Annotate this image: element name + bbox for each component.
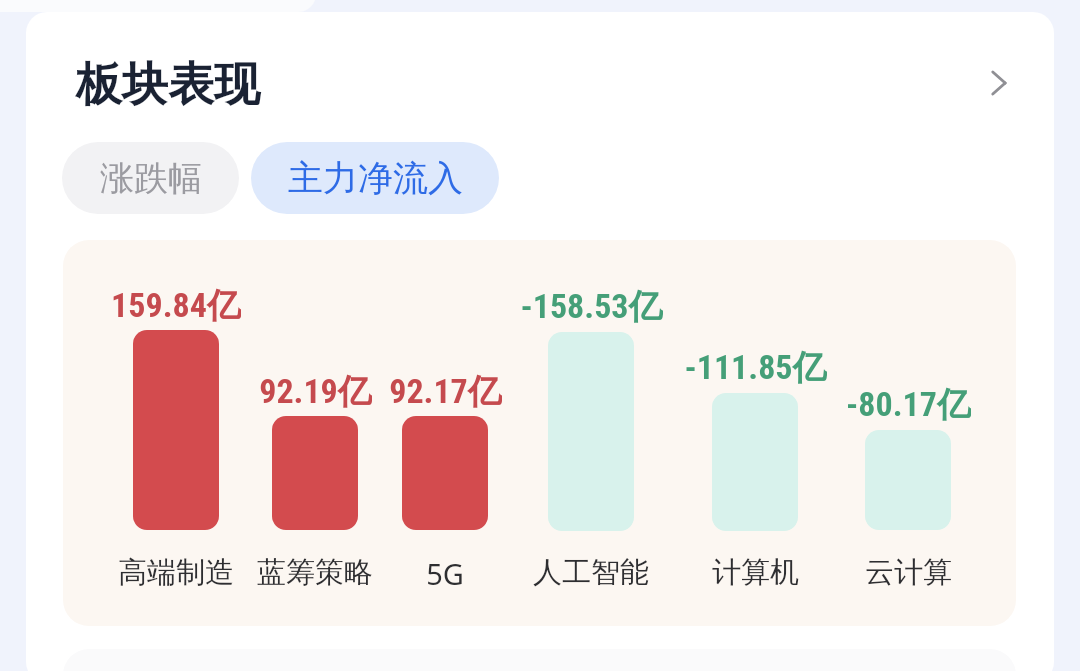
staticText: -111.85亿 bbox=[684, 346, 827, 388]
staticText: 92.19亿 bbox=[259, 370, 372, 412]
staticText: -158.53亿 bbox=[520, 285, 663, 327]
staticText: 计算机 bbox=[712, 554, 799, 591]
staticText: 5G bbox=[426, 554, 464, 593]
staticText: -80.17亿 bbox=[846, 383, 971, 425]
staticText: 板块表现 bbox=[76, 56, 260, 114]
staticText: 涨跌幅 bbox=[100, 157, 202, 200]
staticText: 159.84亿 bbox=[111, 284, 241, 326]
staticText: 高端制造 bbox=[118, 554, 234, 591]
staticText: 蓝筹策略 bbox=[257, 554, 373, 591]
staticText: 云计算 bbox=[865, 554, 952, 591]
staticText: 人工智能 bbox=[533, 554, 649, 591]
button[interactable]: 查看更多 bbox=[963, 47, 1035, 119]
staticText: 92.17亿 bbox=[389, 370, 502, 412]
button[interactable]: 主力净流入 bbox=[251, 142, 499, 214]
staticText: 主力净流入 bbox=[288, 156, 463, 200]
button[interactable]: 板块表现 bbox=[48, 44, 1008, 124]
button[interactable]: 涨跌幅 bbox=[62, 142, 239, 214]
